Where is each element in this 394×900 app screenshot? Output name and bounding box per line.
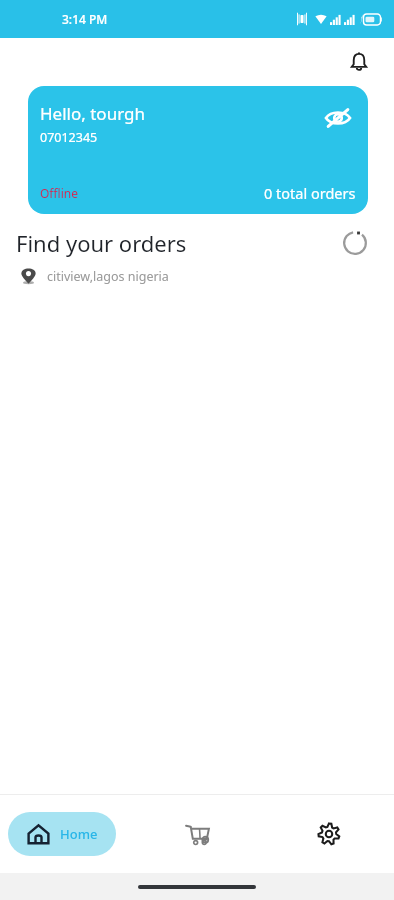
staticText: 07012345 xyxy=(40,129,98,146)
staticText: citiview,lagos nigeria xyxy=(47,268,169,285)
staticText: Home xyxy=(60,825,98,843)
staticText: Offline xyxy=(40,185,79,201)
button[interactable]: Home xyxy=(8,812,116,856)
button[interactable]: Hide balance xyxy=(322,102,354,134)
button[interactable]: Hello, tourgh xyxy=(28,86,368,214)
button[interactable]: Settings xyxy=(305,810,353,858)
staticText: Find your orders xyxy=(16,228,187,258)
button[interactable]: citiview,lagos nigeria xyxy=(18,266,394,286)
button[interactable]: Notifications xyxy=(342,45,376,79)
staticText: 0 total orders xyxy=(264,183,356,203)
button[interactable]: Refresh xyxy=(338,226,372,260)
staticText: 3:14 PM xyxy=(62,11,108,27)
button[interactable]: Orders xyxy=(174,810,222,858)
staticText: Hello, tourgh xyxy=(40,102,145,125)
